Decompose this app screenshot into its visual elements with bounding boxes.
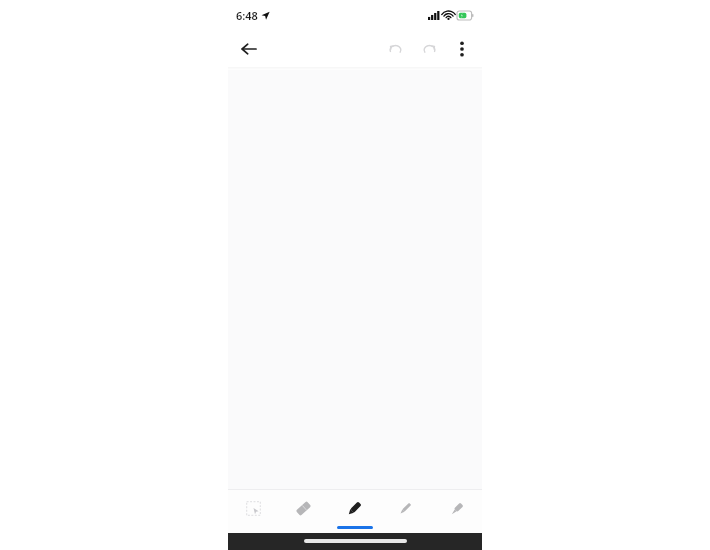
button[interactable]: Pencil tool	[380, 490, 431, 533]
staticText: 6:48	[236, 8, 258, 23]
button[interactable]: Eraser tool	[278, 490, 329, 533]
button[interactable]: Redo	[415, 35, 443, 63]
button[interactable]: More options	[448, 35, 476, 63]
button[interactable]: Back	[236, 36, 262, 62]
button[interactable]: Select tool	[228, 490, 278, 533]
button[interactable]: Undo	[381, 35, 409, 63]
button[interactable]: Highlighter tool	[431, 490, 482, 533]
button[interactable]: Pen tool	[329, 490, 380, 533]
